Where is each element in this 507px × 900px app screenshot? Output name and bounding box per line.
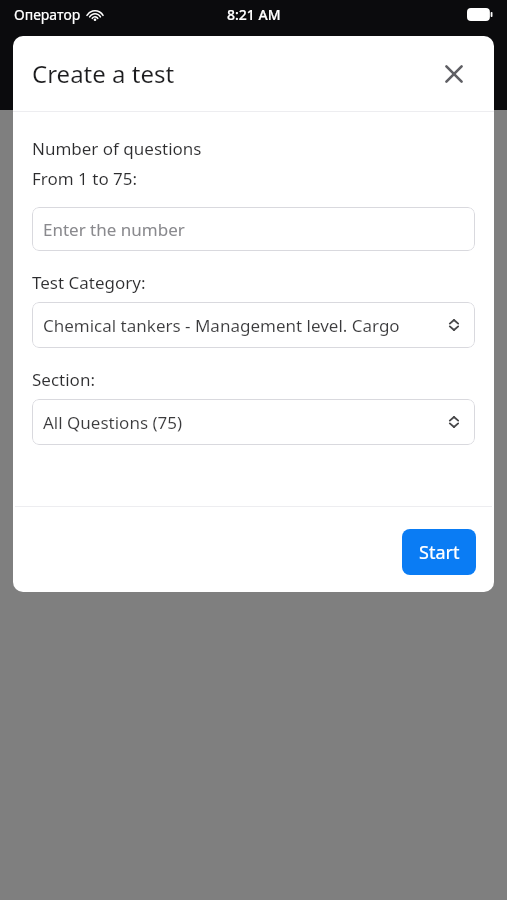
staticText: Оператор — [14, 5, 81, 24]
button[interactable]: Start — [402, 529, 476, 575]
staticText: 8:21 AM — [227, 5, 281, 24]
staticText: Section: — [32, 368, 95, 391]
staticText: Enter the number — [43, 218, 185, 241]
button[interactable]: Chemical tankers - Management level. Car… — [32, 302, 475, 348]
staticText: All Questions (75) — [43, 411, 183, 434]
staticText: From 1 to 75: — [32, 167, 138, 190]
staticText: Number of questions — [32, 137, 202, 160]
button[interactable]: Close — [436, 56, 472, 92]
staticText: Start — [419, 540, 460, 565]
staticText: Create a test — [32, 57, 175, 90]
staticText: Test Category: — [32, 271, 146, 294]
button[interactable]: Enter the number — [32, 207, 475, 251]
button[interactable]: All Questions (75) — [32, 399, 475, 445]
staticText: Chemical tankers - Management level. Car… — [43, 314, 400, 337]
